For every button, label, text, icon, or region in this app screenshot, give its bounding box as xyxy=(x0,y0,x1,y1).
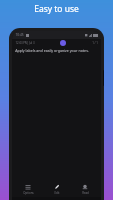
button[interactable]: Note label colour xyxy=(60,40,66,46)
staticText: Easy to use xyxy=(34,3,79,15)
staticText: Options xyxy=(23,191,34,195)
staticText: Apply labels and easily organize your no… xyxy=(15,48,89,53)
button[interactable]: Options xyxy=(16,183,40,196)
staticText: 1 / 1 xyxy=(92,41,98,45)
button[interactable]: Read xyxy=(73,183,97,196)
staticText: 10:45 xyxy=(15,33,24,37)
button[interactable]: Edit xyxy=(45,183,69,196)
staticText: 12:03 PM, Jul 3 xyxy=(15,41,35,45)
staticText: Edit xyxy=(54,191,60,195)
staticText: Read xyxy=(82,191,89,195)
